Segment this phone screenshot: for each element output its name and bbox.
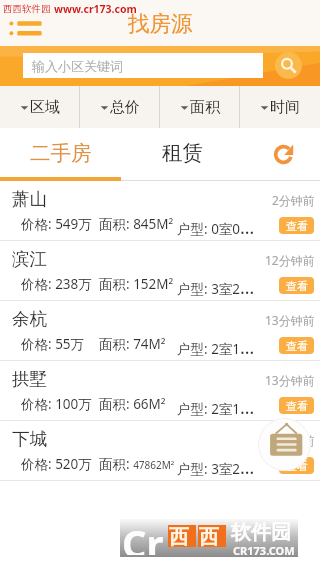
staticText: 滨江	[12, 248, 47, 270]
button[interactable]: 时间	[240, 86, 320, 128]
staticText: 面积: 66M²	[99, 395, 166, 413]
staticText: 户型: 3室2…	[177, 455, 255, 480]
staticText: 二手房	[30, 140, 92, 166]
staticText: Cr	[122, 517, 164, 555]
button[interactable]: 面积	[160, 86, 240, 128]
button[interactable]: 总价	[80, 86, 160, 128]
staticText: 找房源	[128, 10, 193, 37]
staticText: 价格: 55万	[21, 335, 85, 353]
staticText: 13分钟前	[265, 372, 315, 388]
staticText: 余杭	[12, 308, 47, 330]
button[interactable]: 查看	[279, 457, 314, 474]
staticText: 户型: 3室2…	[177, 275, 255, 300]
staticText: 12分钟前	[265, 252, 315, 268]
button[interactable]: 滨江	[0, 241, 320, 301]
staticText: 查看	[286, 339, 308, 353]
staticText: 价格: 520万	[21, 455, 92, 473]
button[interactable]: Refresh	[273, 144, 294, 165]
staticText: 价格: 238万	[21, 275, 92, 293]
staticText: 区域	[30, 98, 60, 117]
staticText: 西	[199, 525, 219, 550]
button[interactable]: 查看	[279, 337, 314, 354]
button[interactable]: 下城	[0, 421, 320, 481]
staticText: 下城	[12, 428, 47, 450]
staticText: 价格: 100万	[21, 395, 92, 413]
staticText: 户型: 0室0…	[177, 215, 255, 240]
button[interactable]: 查看	[279, 217, 314, 234]
button[interactable]: Search	[275, 52, 302, 79]
staticText: 户型: 2室1…	[177, 395, 255, 420]
button[interactable]: 查看	[279, 397, 314, 414]
staticText: 2分钟前	[272, 192, 315, 208]
staticText: 面积: 74M²	[99, 335, 166, 353]
staticText: 13分钟前	[265, 432, 315, 448]
button[interactable]: 萧山	[0, 181, 320, 241]
button[interactable]: 查看	[279, 277, 314, 294]
staticText: 户型: 2室1…	[177, 335, 255, 360]
staticText: 时间	[270, 98, 300, 117]
button[interactable]: 二手房	[0, 128, 121, 177]
staticText: 总价	[110, 98, 140, 117]
staticText: 输入小区关键词	[32, 58, 123, 74]
staticText: 面积	[190, 98, 220, 117]
button[interactable]: 输入小区关键词	[23, 53, 263, 78]
staticText: 萧山	[12, 188, 47, 210]
staticText: 西西软件园	[3, 3, 51, 15]
button[interactable]: 区域	[0, 86, 80, 128]
button[interactable]: Listings	[258, 418, 311, 471]
button[interactable]: 余杭	[0, 301, 320, 361]
staticText: CR173.COM	[233, 543, 295, 558]
staticText: 拱墅	[12, 368, 47, 390]
staticText: 价格: 549万	[21, 215, 92, 233]
button[interactable]: Menu	[7, 16, 43, 32]
staticText: 软件园	[231, 520, 291, 545]
staticText: 租赁	[162, 140, 203, 166]
button[interactable]: 拱墅	[0, 361, 320, 421]
staticText: 查看	[286, 219, 308, 233]
button[interactable]: 租赁	[122, 128, 243, 177]
staticText: 查看	[286, 279, 308, 293]
staticText: 面积: 47862M²	[99, 455, 175, 473]
staticText: 查看	[286, 399, 308, 413]
staticText: www.cr173.com	[54, 2, 137, 16]
staticText: 西	[169, 525, 189, 550]
staticText: 面积: 845M²	[99, 215, 174, 233]
staticText: 查看	[286, 459, 308, 473]
staticText: 面积: 152M²	[99, 275, 174, 293]
staticText: 13分钟前	[265, 312, 315, 328]
